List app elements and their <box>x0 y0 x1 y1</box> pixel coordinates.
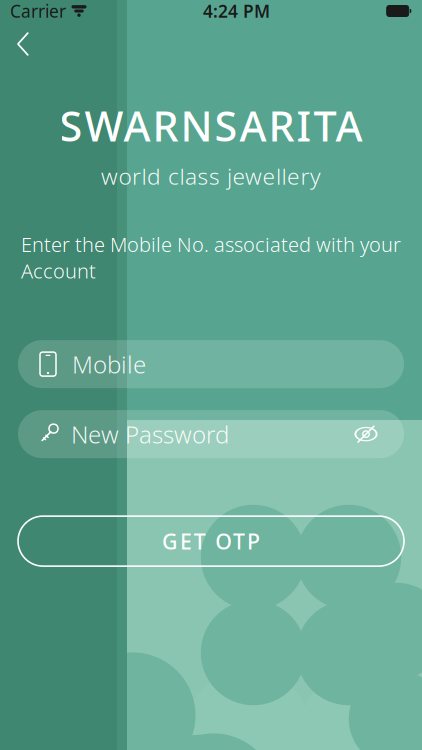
staticText: New Password <box>71 418 229 450</box>
staticText: Mobile <box>72 348 146 380</box>
button[interactable]: GET OTP <box>18 516 404 566</box>
button[interactable]: Back <box>0 22 46 66</box>
staticText: Enter the Mobile No. associated with you… <box>21 231 401 284</box>
button[interactable]: Show password <box>340 410 392 458</box>
button[interactable]: Mobile <box>18 340 404 388</box>
staticText: GET OTP <box>162 527 260 555</box>
staticText: 4:24 PM <box>203 0 270 22</box>
staticText: SWARNSARITA <box>59 98 362 153</box>
staticText: world class jewellery <box>101 161 321 191</box>
staticText: Carrier <box>10 0 66 22</box>
